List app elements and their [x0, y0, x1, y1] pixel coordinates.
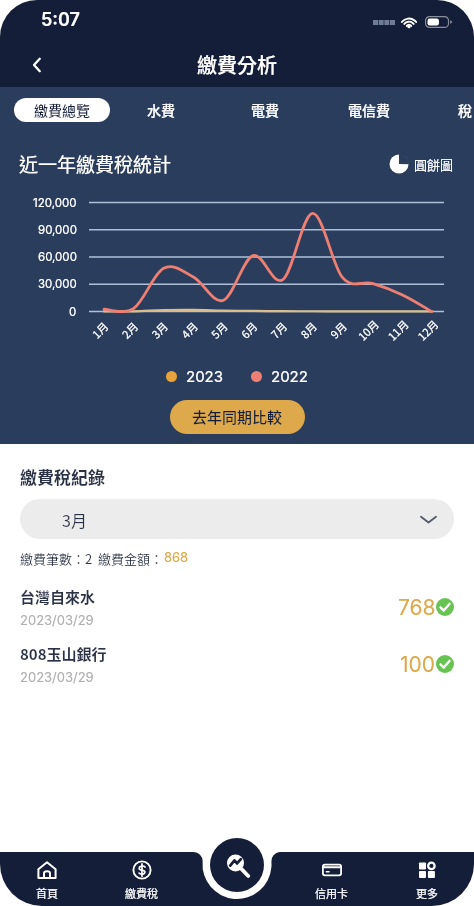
- button[interactable]: 電費: [234, 97, 296, 123]
- staticText: 電信費: [348, 100, 390, 120]
- staticText: 更多: [416, 885, 438, 901]
- button[interactable]: 更多: [379, 852, 474, 906]
- staticText: 3月: [62, 508, 87, 531]
- staticText: 繳費總覽: [34, 100, 90, 120]
- staticText: 2023/03/29: [20, 612, 94, 628]
- button[interactable]: 去年同期比較: [170, 400, 305, 434]
- staticText: 2023/03/29: [20, 669, 94, 685]
- button[interactable]: Back: [20, 49, 52, 81]
- staticText: 近一年繳費稅統計: [19, 150, 172, 178]
- button[interactable]: 水費: [130, 97, 192, 123]
- staticText: 808玉山銀行: [20, 643, 107, 665]
- staticText: 首頁: [36, 885, 58, 901]
- staticText: 2022: [271, 367, 308, 385]
- button[interactable]: 首頁: [0, 852, 94, 906]
- staticText: 信用卡: [315, 885, 348, 901]
- button[interactable]: 繳費總覽: [14, 98, 110, 122]
- staticText: 繳費稅: [125, 885, 158, 901]
- staticText: 台灣自來水: [20, 586, 96, 608]
- staticText: 100: [400, 652, 436, 677]
- button[interactable]: 圓餅圖: [389, 154, 454, 174]
- button[interactable]: 台灣自來水: [0, 582, 474, 632]
- staticText: 768: [398, 595, 436, 620]
- staticText: 電費: [251, 100, 279, 120]
- staticText: 圓餅圖: [414, 155, 454, 174]
- staticText: 繳費稅紀錄: [20, 464, 105, 489]
- button[interactable]: 繳費稅: [94, 852, 189, 906]
- button[interactable]: Search analysis: [210, 838, 264, 892]
- staticText: 2023: [186, 367, 224, 385]
- staticText: 868: [164, 549, 189, 565]
- button[interactable]: 稅: [434, 97, 474, 123]
- staticText: 繳費分析: [197, 50, 277, 79]
- button[interactable]: 電信費: [338, 97, 400, 123]
- staticText: 繳費筆數：2 繳費金額：: [20, 549, 164, 568]
- staticText: 水費: [147, 100, 175, 120]
- button[interactable]: 808玉山銀行: [0, 639, 474, 689]
- staticText: 去年同期比較: [192, 406, 283, 428]
- staticText: 5:07: [41, 9, 80, 31]
- button[interactable]: 3月: [20, 499, 454, 539]
- staticText: 稅: [458, 100, 472, 120]
- button[interactable]: 信用卡: [284, 852, 379, 906]
